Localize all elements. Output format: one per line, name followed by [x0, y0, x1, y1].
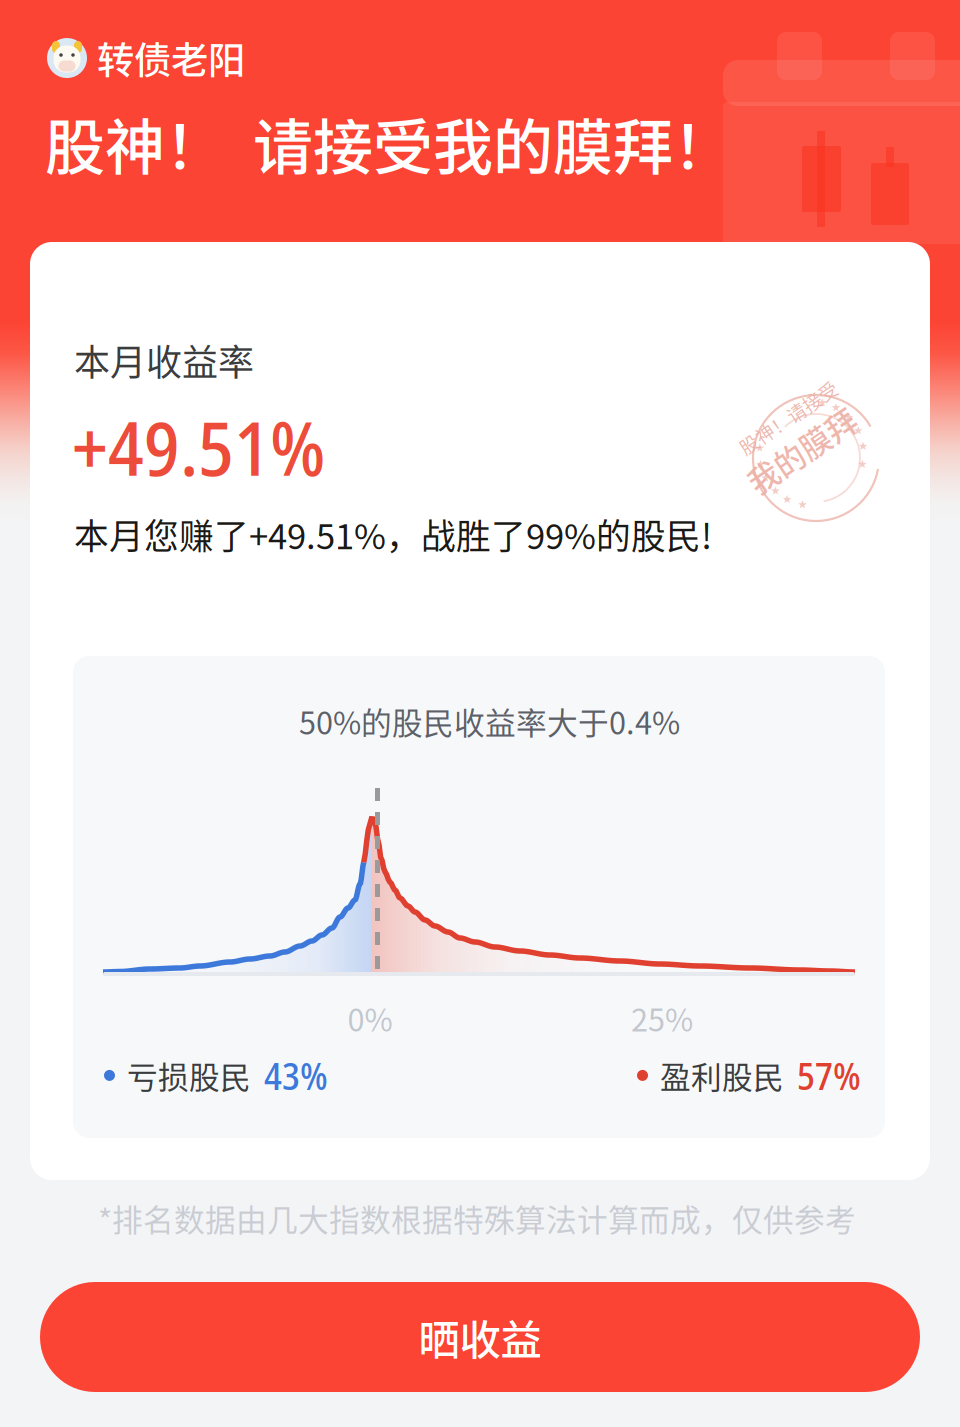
- staticText: 盈利股民: [660, 1053, 784, 1098]
- staticText: 0%: [347, 996, 392, 1040]
- staticText: 43%: [264, 1050, 328, 1101]
- staticText: 50%的股民收益率大于0.4%: [299, 699, 680, 743]
- staticText: 晒收益: [418, 1307, 541, 1367]
- staticText: 转债老阳: [97, 31, 245, 85]
- staticText: 本月您赚了+49.51%，战胜了99%的股民!: [74, 509, 712, 559]
- staticText: 本月收益率: [74, 334, 254, 386]
- staticText: 57%: [797, 1050, 861, 1101]
- staticText: 我的膜拜: [747, 421, 871, 465]
- staticText: 股神！ 请接受我的膜拜！: [45, 100, 733, 187]
- staticText: 股神！请接受: [759, 395, 873, 422]
- staticText: *排名数据由几大指数根据特殊算法计算而成，仅供参考: [98, 1196, 856, 1240]
- button[interactable]: 晒收益: [40, 1282, 920, 1392]
- staticText: 亏损股民: [127, 1053, 251, 1098]
- staticText: +49.51%: [72, 396, 325, 498]
- staticText: 25%: [631, 996, 693, 1040]
- button[interactable]: 转债老阳: [47, 31, 245, 85]
